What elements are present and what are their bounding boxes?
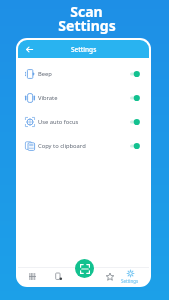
button[interactable]: Copy to clipboard <box>18 134 149 158</box>
button[interactable]: Vibrate <box>18 86 149 110</box>
button[interactable]: Favourites <box>96 268 124 285</box>
button[interactable]: Toggle Use auto focus <box>130 117 140 127</box>
staticText: Settings <box>71 45 97 54</box>
button[interactable]: Scan code <box>75 259 94 278</box>
button[interactable]: Toggle Copy to clipboard <box>130 141 140 151</box>
button[interactable]: My codes <box>44 268 72 285</box>
button[interactable]: Beep <box>18 62 149 86</box>
staticText: Settings <box>121 278 139 284</box>
staticText: Vibrate <box>38 94 58 102</box>
button[interactable]: Toggle Vibrate <box>130 93 140 103</box>
staticText: Use auto focus <box>38 118 79 126</box>
staticText: Copy to clipboard <box>38 142 86 150</box>
staticText: Settings <box>58 16 116 35</box>
button[interactable]: Use auto focus <box>18 110 149 134</box>
staticText: Beep <box>38 70 52 78</box>
staticText: Scan <box>70 2 103 21</box>
button[interactable]: Toggle Beep <box>130 69 140 79</box>
button[interactable]: Scan history <box>18 268 46 285</box>
button[interactable]: Settings <box>116 268 144 285</box>
button[interactable]: Back <box>23 43 36 56</box>
